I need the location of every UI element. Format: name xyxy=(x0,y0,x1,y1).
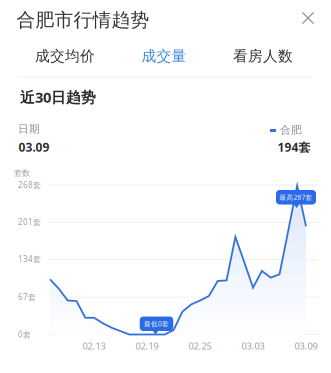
staticText: 套数 xyxy=(14,168,30,178)
staticText: 成交量 xyxy=(141,47,186,65)
staticText: 201套 xyxy=(18,217,41,227)
staticText: 268套 xyxy=(18,180,41,190)
staticText: 合肥 xyxy=(280,123,302,136)
staticText: 134套 xyxy=(18,254,41,264)
staticText: 02.19 xyxy=(135,340,158,352)
staticText: 0套 xyxy=(18,329,31,340)
staticText: 03.09 xyxy=(294,340,317,352)
staticText: 合肥市行情趋势 xyxy=(16,8,149,31)
staticText: 日期 xyxy=(18,122,40,135)
staticText: 03.03 xyxy=(241,340,264,352)
staticText: 看房人数 xyxy=(233,47,293,65)
button[interactable]: 关闭 xyxy=(294,4,322,32)
button[interactable]: 看房人数 xyxy=(226,43,300,69)
staticText: 近30日趋势 xyxy=(20,87,96,107)
staticText: 67套 xyxy=(18,292,36,302)
staticText: 最高267套 xyxy=(279,193,312,202)
button[interactable]: 成交量 xyxy=(127,43,201,69)
button[interactable]: 成交均价 xyxy=(28,43,102,69)
staticText: 03.09 xyxy=(18,139,49,155)
staticText: 02.25 xyxy=(188,340,211,352)
staticText: 02.13 xyxy=(82,340,105,352)
staticText: 194套 xyxy=(277,139,310,155)
staticText: 最低0套 xyxy=(144,319,169,328)
staticText: 成交均价 xyxy=(35,47,95,65)
